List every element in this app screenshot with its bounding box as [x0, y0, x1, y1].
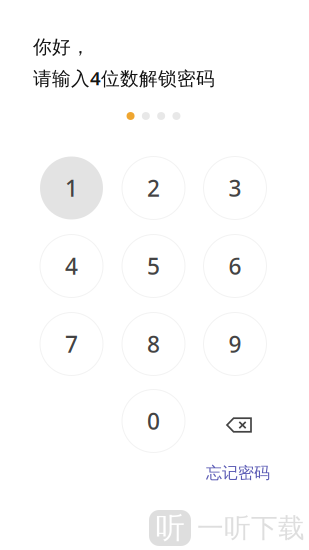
staticText: 5: [147, 251, 160, 281]
staticText: 忘记密码: [206, 463, 270, 483]
staticText: 6: [228, 251, 241, 281]
staticText: 7: [65, 329, 78, 359]
button[interactable]: 5: [122, 234, 185, 297]
button[interactable]: 0: [122, 389, 185, 452]
button[interactable]: 3: [203, 156, 266, 219]
button[interactable]: 7: [40, 312, 103, 375]
button[interactable]: 8: [122, 312, 185, 375]
staticText: 2: [147, 173, 160, 203]
button[interactable]: 6: [203, 234, 266, 297]
button[interactable]: 忘记密码: [195, 458, 281, 488]
staticText: 4: [65, 251, 78, 281]
button[interactable]: 4: [40, 234, 103, 297]
button[interactable]: 1: [40, 156, 103, 219]
staticText: 8: [147, 329, 160, 359]
staticText: 你好，: [33, 35, 90, 58]
staticText: 3: [228, 173, 241, 203]
button[interactable]: Delete: [203, 389, 266, 452]
staticText: 1: [65, 173, 78, 203]
staticText: 9: [228, 329, 241, 359]
staticText: 请输入4位数解锁密码: [33, 66, 215, 90]
staticText: 0: [147, 406, 160, 436]
staticText: 一听下载: [197, 512, 305, 544]
button[interactable]: 2: [122, 156, 185, 219]
staticText: 听: [155, 510, 184, 546]
button[interactable]: 9: [203, 312, 266, 375]
